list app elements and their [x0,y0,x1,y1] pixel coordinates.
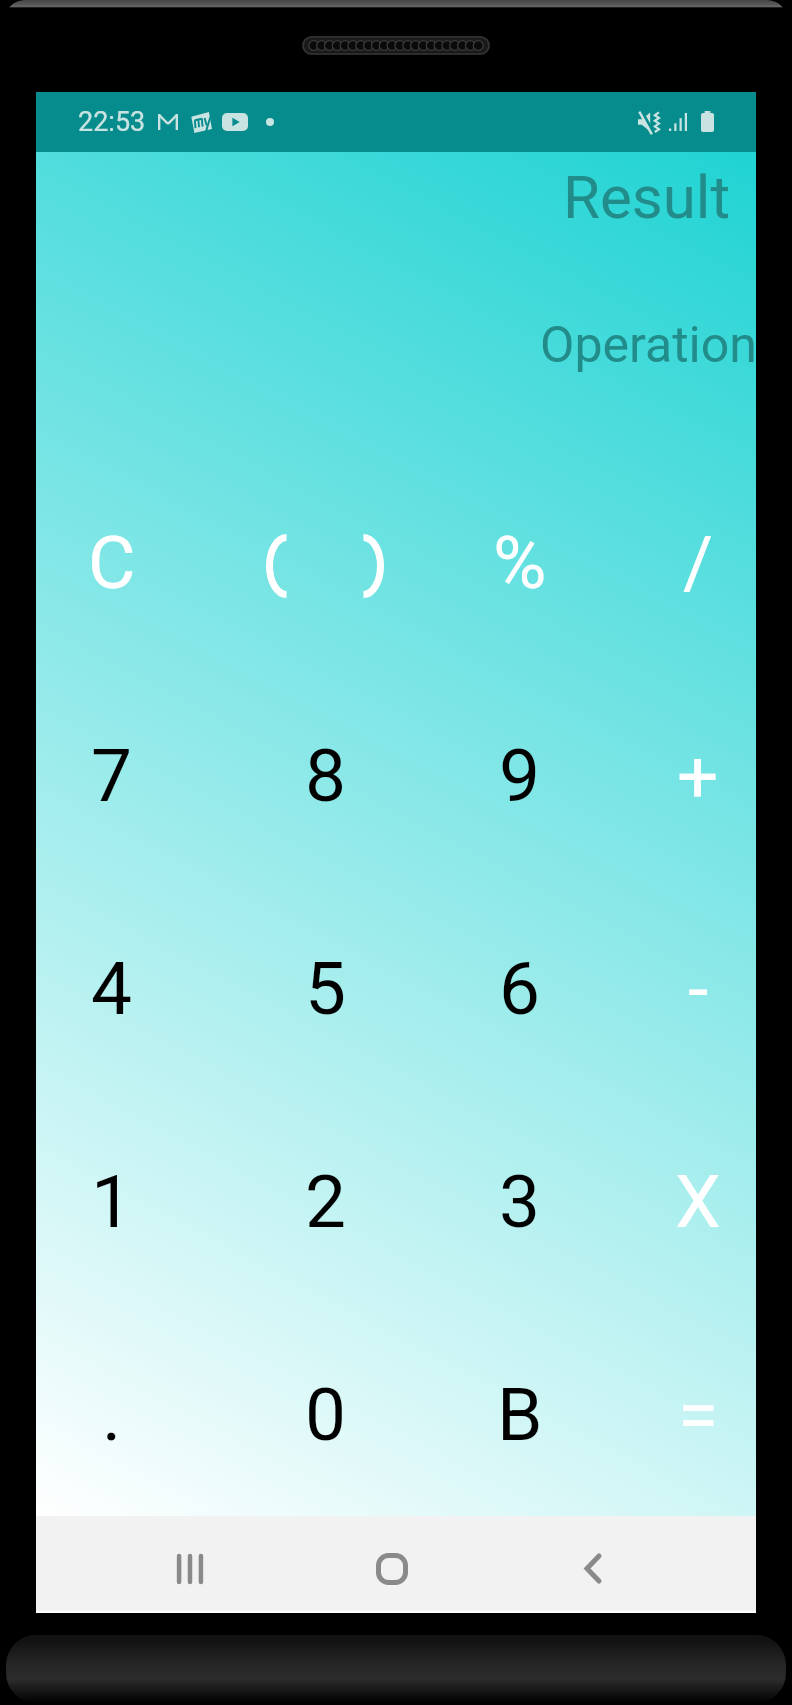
staticText: 22:53 [78,106,146,138]
button[interactable]: / [628,456,768,669]
button[interactable]: 3 [450,1095,590,1308]
button[interactable]: 6 [450,882,590,1095]
button[interactable] [302,456,442,669]
staticText: 7 [91,733,133,819]
staticText: % [493,520,547,606]
button[interactable]: B [450,1308,590,1521]
staticText: = [678,1372,719,1458]
staticText: 6 [499,946,541,1032]
staticText: 1 [91,1159,133,1245]
button[interactable]: Home [332,1516,452,1613]
button[interactable]: Back [533,1516,653,1613]
button[interactable] [208,456,348,669]
button[interactable]: - [628,882,768,1095]
button[interactable]: Recent apps [130,1516,250,1613]
button[interactable]: 8 [256,669,396,882]
button[interactable]: 2 [256,1095,396,1308]
button[interactable]: + [628,669,768,882]
button[interactable]: 5 [256,882,396,1095]
staticText: 5 [305,946,347,1032]
staticText: 8 [305,733,347,819]
button[interactable]: = [628,1308,768,1521]
staticText: 4 [91,946,133,1032]
staticText: 3 [499,1159,541,1245]
staticText: B [497,1372,543,1458]
staticText: + [677,733,719,819]
button[interactable]: 7 [42,669,182,882]
staticText: Operation [540,316,757,375]
staticText: Result [563,162,731,232]
staticText: 2 [305,1159,347,1245]
button[interactable]: C [42,456,182,669]
button[interactable]: 1 [42,1095,182,1308]
button[interactable]: % [450,456,590,669]
staticText: . [102,1372,122,1458]
staticText: C [88,520,136,606]
staticText: - [688,946,709,1032]
button[interactable]: 0 [256,1308,396,1521]
staticText: 0 [305,1372,347,1458]
button[interactable]: 9 [450,669,590,882]
button[interactable]: X [628,1095,768,1308]
button[interactable]: . [42,1308,182,1521]
staticText: X [675,1159,721,1245]
button[interactable]: 4 [42,882,182,1095]
staticText: 9 [499,733,541,819]
staticText: / [683,520,714,606]
